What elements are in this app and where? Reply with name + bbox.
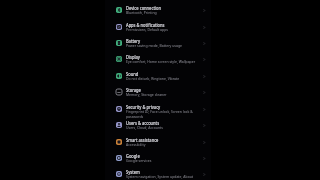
- staticText: Apps & notifications: [126, 22, 211, 28]
- staticText: Eye comfort, Home screen style, Wallpape…: [126, 59, 211, 64]
- staticText: Battery: [126, 38, 211, 44]
- staticText: Storage: [126, 87, 211, 93]
- button[interactable]: Apps & notifications: [105, 19, 211, 35]
- button[interactable]: Security & privacy: [105, 101, 211, 117]
- staticText: Do not disturb, Ringtone, Vibrate: [126, 76, 211, 81]
- button[interactable]: Display: [105, 51, 211, 67]
- button[interactable]: Device connection: [105, 2, 211, 18]
- staticText: Smart assistance: [126, 137, 211, 143]
- staticText: Display: [126, 54, 211, 60]
- button[interactable]: Users & accounts: [105, 117, 211, 133]
- staticText: Accessibility: [126, 142, 211, 147]
- staticText: Sound: [126, 71, 211, 77]
- button[interactable]: System: [105, 166, 211, 180]
- staticText: System: [126, 169, 211, 175]
- staticText: Users, Cloud, Accounts: [126, 125, 211, 130]
- staticText: Bluetooth, Printing: [126, 10, 211, 15]
- button[interactable]: Google: [105, 150, 211, 166]
- staticText: Power saving mode, Battery usage: [126, 43, 211, 48]
- button[interactable]: Sound: [105, 68, 211, 84]
- staticText: System navigation, System update, About: [126, 174, 211, 179]
- staticText: Google: [126, 153, 211, 159]
- staticText: Users & accounts: [126, 120, 211, 126]
- staticText: Google services: [126, 158, 211, 163]
- staticText: Permissions, Default apps: [126, 27, 211, 32]
- button[interactable]: Smart assistance: [105, 134, 211, 150]
- staticText: Security & privacy: [126, 104, 211, 110]
- button[interactable]: Storage: [105, 84, 211, 100]
- staticText: Fingerprint ID, Face unlock, Screen lock…: [126, 109, 199, 119]
- button[interactable]: Battery: [105, 35, 211, 51]
- staticText: Device connection: [126, 5, 211, 11]
- staticText: Memory, Storage cleaner: [126, 92, 211, 97]
